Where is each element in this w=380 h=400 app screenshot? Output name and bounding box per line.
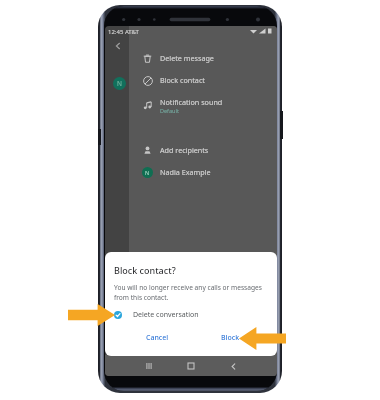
- button[interactable]: Delete conversation: [114, 307, 205, 322]
- staticText: Block contact?: [114, 264, 176, 276]
- staticText: Notification sound: [160, 97, 223, 107]
- button[interactable]: Add recipients: [129, 139, 277, 161]
- button[interactable]: Recents: [142, 359, 156, 373]
- staticText: N: [117, 79, 122, 88]
- button[interactable]: More options: [125, 39, 139, 53]
- staticText: Cancel: [146, 333, 169, 343]
- button[interactable]: Block: [215, 330, 246, 346]
- button[interactable]: Delete message: [129, 47, 277, 69]
- staticText: You will no longer receive any calls or …: [114, 283, 274, 302]
- button[interactable]: Cancel: [140, 330, 175, 346]
- button[interactable]: Notification sound: [129, 94, 277, 116]
- staticText: Default: [160, 107, 179, 114]
- button[interactable]: N: [113, 77, 126, 90]
- staticText: Block contact: [160, 75, 205, 85]
- staticText: Delete conversation: [133, 310, 199, 320]
- button[interactable]: N: [129, 161, 277, 183]
- staticText: Nadia Example: [160, 167, 211, 177]
- staticText: 12:45 AT&T: [108, 28, 139, 36]
- staticText: Delete message: [160, 53, 214, 63]
- staticText: Add recipients: [160, 145, 209, 155]
- staticText: N: [145, 169, 150, 176]
- button[interactable]: Back: [111, 39, 125, 53]
- staticText: Block: [221, 333, 240, 343]
- button[interactable]: Block contact: [129, 69, 277, 91]
- button[interactable]: Home: [184, 359, 198, 373]
- button[interactable]: Back: [226, 359, 240, 373]
